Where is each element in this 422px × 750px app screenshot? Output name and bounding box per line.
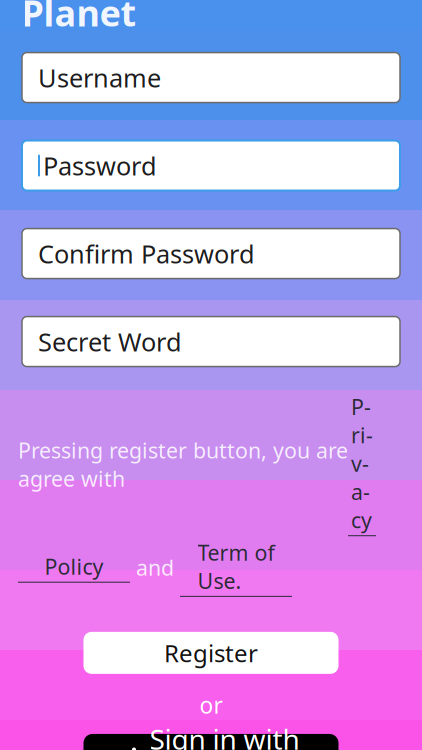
staticText: Confirm Password bbox=[38, 237, 255, 270]
staticText: Term of Use. bbox=[197, 538, 274, 595]
staticText: Username bbox=[38, 61, 161, 94]
staticText: Pressing register button, you are agree … bbox=[18, 436, 348, 493]
button[interactable]: Term of Use. bbox=[180, 538, 292, 597]
staticText: Welcome to the Pony Planet bbox=[21, 0, 400, 36]
button[interactable]: Password bbox=[22, 140, 400, 190]
staticText: Secret Word bbox=[38, 325, 182, 358]
button[interactable]: Privacy bbox=[348, 392, 376, 536]
staticText: Password bbox=[43, 149, 157, 182]
button[interactable]: Policy bbox=[18, 552, 130, 583]
staticText: and bbox=[130, 553, 180, 582]
button[interactable]: Sign in with Apple bbox=[83, 734, 338, 750]
staticText: or bbox=[199, 690, 222, 720]
button[interactable]: Confirm Password bbox=[22, 228, 400, 278]
button[interactable]: Username bbox=[22, 52, 400, 102]
staticText: Policy bbox=[44, 552, 103, 581]
staticText: Register bbox=[164, 637, 258, 669]
staticText: Sign in with Apple bbox=[149, 720, 299, 750]
button[interactable]: Register bbox=[83, 632, 338, 674]
staticText: Privacy bbox=[351, 392, 373, 534]
button[interactable]: Secret Word bbox=[22, 316, 400, 366]
